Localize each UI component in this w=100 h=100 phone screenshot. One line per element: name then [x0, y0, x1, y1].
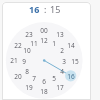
button[interactable]: 1: [47, 39, 61, 48]
button[interactable]: 23: [22, 30, 36, 39]
button[interactable]: 12: [37, 36, 51, 45]
staticText: 22: [14, 41, 22, 50]
button[interactable]: 17: [53, 83, 67, 92]
button[interactable]: 16: [64, 72, 78, 81]
staticText: 2: [60, 46, 64, 55]
staticText: 18: [40, 87, 48, 96]
button[interactable]: 18: [37, 87, 51, 96]
button[interactable]: 6: [37, 77, 51, 86]
button[interactable]: 21: [7, 56, 21, 65]
button[interactable]: 13: [53, 30, 67, 39]
staticText: 5: [52, 74, 56, 83]
button[interactable]: 15: [47, 2, 63, 15]
button[interactable]: 4: [55, 67, 69, 76]
staticText: 17: [56, 83, 64, 92]
staticText: 4: [60, 67, 64, 76]
staticText: :: [44, 3, 47, 15]
staticText: 1: [52, 39, 56, 48]
button[interactable]: 22: [11, 41, 25, 50]
button[interactable]: 9: [17, 57, 31, 66]
button[interactable]: 5: [47, 74, 61, 83]
staticText: 21: [10, 56, 18, 65]
button[interactable]: 19: [22, 83, 36, 92]
staticText: 6: [42, 77, 46, 86]
button[interactable]: 15: [68, 57, 82, 66]
staticText: 14: [67, 41, 75, 50]
staticText: 3: [62, 57, 66, 66]
staticText: 13: [56, 30, 64, 39]
staticText: 9: [22, 57, 26, 66]
button[interactable]: 3: [57, 57, 71, 66]
button[interactable]: 14: [64, 41, 78, 50]
staticText: 15: [71, 57, 79, 66]
button[interactable]: 7: [27, 74, 41, 83]
staticText: 11: [30, 39, 38, 48]
button[interactable]: 8: [20, 67, 34, 76]
staticText: 7: [32, 74, 36, 83]
staticText: 23: [25, 30, 33, 39]
staticText: 15: [50, 3, 61, 15]
staticText: 00: [40, 26, 48, 35]
staticText: 19: [25, 83, 33, 92]
button[interactable]: 20: [11, 72, 25, 81]
staticText: 12: [40, 36, 48, 45]
button[interactable]: 16: [26, 2, 42, 15]
button[interactable]: 2: [55, 46, 69, 55]
staticText: 20: [14, 72, 22, 81]
staticText: 8: [25, 67, 29, 76]
button[interactable]: 11: [27, 39, 41, 48]
staticText: 16: [67, 72, 75, 81]
staticText: 10: [23, 46, 31, 55]
staticText: 16: [29, 3, 40, 15]
button[interactable]: 00: [37, 26, 51, 35]
button[interactable]: 10: [20, 46, 34, 55]
